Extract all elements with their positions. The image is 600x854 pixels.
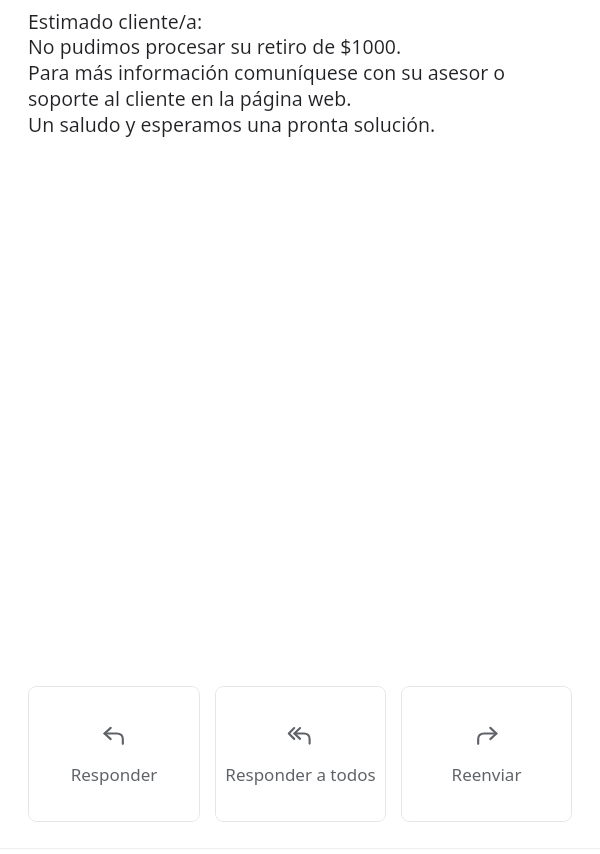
staticText: Reenviar: [407, 763, 566, 786]
staticText: Responder a todos: [221, 763, 380, 786]
staticText: Responder: [34, 763, 194, 786]
staticText: Estimado cliente/a: No pudimos procesar …: [28, 8, 564, 138]
button[interactable]: Reenviar: [401, 686, 572, 822]
button[interactable]: Responder: [28, 686, 200, 822]
button[interactable]: Responder a todos: [215, 686, 386, 822]
